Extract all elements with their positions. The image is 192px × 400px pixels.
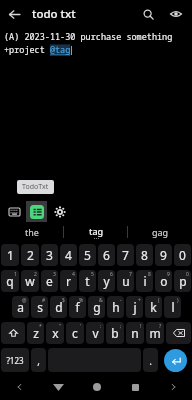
button[interactable]: t xyxy=(79,270,96,292)
staticText: 2 xyxy=(34,271,37,278)
staticText: 1 xyxy=(14,271,17,278)
staticText: o xyxy=(160,273,168,289)
button[interactable]: Search xyxy=(134,0,162,28)
staticText: y xyxy=(103,273,110,289)
button[interactable]: k xyxy=(145,296,162,318)
staticText: 6 xyxy=(110,271,113,278)
staticText: r xyxy=(66,273,71,289)
button[interactable]: Settings xyxy=(50,202,69,221)
button[interactable]: 4 xyxy=(60,244,77,266)
button[interactable]: h xyxy=(107,296,124,318)
button[interactable]: the xyxy=(0,222,64,242)
staticText: s xyxy=(37,299,43,315)
button[interactable]: q xyxy=(1,270,19,292)
button[interactable]: s xyxy=(31,296,48,318)
button[interactable]: u xyxy=(117,270,134,292)
button[interactable]: Recents xyxy=(116,374,154,400)
staticText: : xyxy=(100,323,102,330)
staticText: ! xyxy=(140,323,142,330)
button[interactable]: j xyxy=(126,296,143,318)
staticText: 7 xyxy=(122,247,129,263)
staticText: z xyxy=(33,325,39,341)
staticText: % xyxy=(79,297,84,304)
staticText: 1 xyxy=(7,247,14,263)
button[interactable]: 3 xyxy=(41,244,58,266)
staticText: u xyxy=(122,273,130,289)
button[interactable]: i xyxy=(136,270,153,292)
staticText: 0 xyxy=(186,271,189,278)
button[interactable]: 5 xyxy=(79,244,96,266)
staticText: - xyxy=(120,297,122,304)
staticText: i xyxy=(143,273,147,289)
button[interactable]: 6 xyxy=(98,244,115,266)
button[interactable]: gag xyxy=(128,222,192,242)
staticText: 6 xyxy=(103,247,110,263)
button[interactable]: TodoTxt keyboard xyxy=(26,201,47,222)
button[interactable]: 7 xyxy=(117,244,134,266)
button[interactable]: Back xyxy=(0,0,28,28)
button[interactable]: 8 xyxy=(136,244,153,266)
button[interactable]: v xyxy=(86,322,104,344)
staticText: . xyxy=(149,354,152,368)
button[interactable]: g xyxy=(88,296,105,318)
staticText: 5 xyxy=(84,247,91,263)
button[interactable]: y xyxy=(98,270,115,292)
button[interactable]: e xyxy=(41,270,58,292)
staticText: h xyxy=(112,299,120,315)
button[interactable]: Next xyxy=(154,374,192,400)
staticText: ? xyxy=(159,323,162,330)
button[interactable]: Shift xyxy=(1,322,25,344)
button[interactable]: . xyxy=(143,348,158,372)
staticText: todo txt xyxy=(32,6,76,22)
button[interactable]: Home xyxy=(78,374,116,400)
button[interactable]: Backspace xyxy=(166,322,191,344)
button[interactable]: w xyxy=(21,270,39,292)
button[interactable]: ?123 xyxy=(1,348,29,372)
staticText: 8 xyxy=(141,247,148,263)
button[interactable]: n xyxy=(126,322,144,344)
staticText: ; xyxy=(120,323,122,330)
button[interactable]: Previous xyxy=(0,374,39,400)
button[interactable]: b xyxy=(106,322,124,344)
staticText: p xyxy=(179,273,187,289)
button[interactable]: m xyxy=(146,322,164,344)
staticText: g xyxy=(93,299,101,315)
button[interactable]: d xyxy=(50,296,67,318)
staticText: j xyxy=(133,299,137,315)
staticText: ) xyxy=(177,297,179,304)
button[interactable]: a xyxy=(12,296,29,318)
staticText: the xyxy=(25,226,39,238)
button[interactable]: f xyxy=(69,296,86,318)
button[interactable]: Hide keyboard xyxy=(39,374,78,400)
button[interactable]: 2 xyxy=(21,244,39,266)
button[interactable]: 9 xyxy=(155,244,172,266)
staticText: 9 xyxy=(167,271,170,278)
staticText: q xyxy=(6,273,14,289)
button[interactable]: o xyxy=(155,270,172,292)
staticText: w xyxy=(25,273,35,289)
button[interactable]: Keyboard xyxy=(5,202,24,221)
staticText: n xyxy=(131,325,139,341)
staticText: d xyxy=(55,299,63,315)
button[interactable]: 0 xyxy=(174,244,191,266)
staticText: 9 xyxy=(160,247,167,263)
staticText: " xyxy=(59,323,62,330)
button[interactable]: p xyxy=(174,270,191,292)
staticText: 4 xyxy=(72,271,75,278)
button[interactable]: 1 xyxy=(1,244,19,266)
button[interactable]: r xyxy=(60,270,77,292)
staticText: f xyxy=(75,299,80,315)
staticText: 0 xyxy=(179,247,186,263)
button[interactable]: l xyxy=(164,296,181,318)
staticText: 4 xyxy=(65,247,72,263)
button[interactable]: c xyxy=(66,322,84,344)
button[interactable]: tag xyxy=(64,222,128,242)
staticText: 3 xyxy=(53,271,56,278)
button[interactable]: z xyxy=(27,322,44,344)
button[interactable]: Preview xyxy=(162,0,190,28)
button[interactable]: , xyxy=(31,348,46,372)
button[interactable]: x xyxy=(46,322,64,344)
button[interactable]: Enter xyxy=(164,349,187,372)
staticText: @ xyxy=(22,297,27,304)
